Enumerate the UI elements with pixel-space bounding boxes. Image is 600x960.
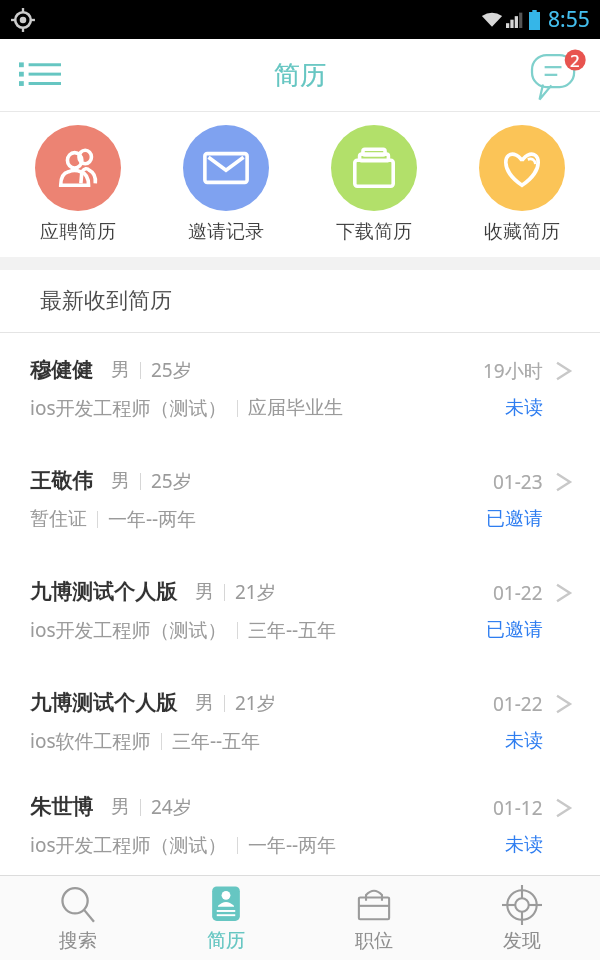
staticText: 九博测试个人版 (30, 579, 177, 605)
staticText: 职位 (355, 929, 393, 953)
staticText: 25岁 (151, 468, 192, 494)
staticText: 穆健健 (30, 357, 93, 383)
staticText: 01-22 (493, 580, 543, 606)
staticText: 收藏简历 (484, 220, 560, 244)
staticText: 三年--五年 (248, 617, 337, 643)
staticText: 简历 (274, 59, 326, 92)
button[interactable]: Messages (528, 44, 590, 106)
staticText: 朱世博 (30, 794, 93, 820)
staticText: 最新收到简历 (40, 287, 172, 315)
staticText: 王敬伟 (30, 468, 93, 494)
staticText: 已邀请 (486, 618, 543, 642)
staticText: 简历 (207, 929, 245, 953)
button[interactable]: 应聘简历 (8, 125, 148, 244)
staticText: 男 (195, 691, 214, 715)
staticText: 2 (570, 49, 580, 72)
staticText: 暂住证 (30, 507, 87, 531)
staticText: 8:55 (548, 5, 590, 34)
staticText: 三年--五年 (172, 728, 261, 754)
button[interactable]: 简历 (156, 884, 296, 953)
staticText: 21岁 (235, 690, 276, 716)
staticText: 未读 (505, 729, 543, 753)
button[interactable]: 九博测试个人版 (0, 555, 600, 666)
staticText: 01-12 (493, 795, 543, 821)
button[interactable]: 发现 (452, 884, 592, 953)
staticText: 未读 (505, 833, 543, 857)
staticText: 应聘简历 (40, 220, 116, 244)
button[interactable]: 搜索 (8, 884, 148, 953)
staticText: 下载简历 (336, 220, 412, 244)
staticText: 搜索 (59, 929, 97, 953)
button[interactable]: 下载简历 (304, 125, 444, 244)
button[interactable]: 朱世博 (0, 777, 600, 875)
button[interactable]: 收藏简历 (452, 125, 592, 244)
staticText: 男 (111, 358, 130, 382)
staticText: 一年--两年 (248, 832, 337, 858)
staticText: 邀请记录 (188, 220, 264, 244)
button[interactable]: 穆健健 (0, 333, 600, 444)
staticText: ios开发工程师（测试） (30, 617, 227, 643)
staticText: ios开发工程师（测试） (30, 832, 227, 858)
button[interactable]: 邀请记录 (156, 125, 296, 244)
staticText: 发现 (503, 929, 541, 953)
staticText: ios软件工程师 (30, 728, 151, 754)
button[interactable]: 九博测试个人版 (0, 666, 600, 777)
staticText: 未读 (505, 396, 543, 420)
staticText: 一年--两年 (108, 506, 197, 532)
staticText: 男 (111, 469, 130, 493)
button[interactable]: 职位 (304, 884, 444, 953)
staticText: 九博测试个人版 (30, 690, 177, 716)
staticText: 01-22 (493, 691, 543, 717)
staticText: 男 (195, 580, 214, 604)
staticText: ios开发工程师（测试） (30, 395, 227, 421)
staticText: 01-23 (493, 469, 543, 495)
staticText: 男 (111, 795, 130, 819)
staticText: 19小时 (483, 358, 543, 384)
staticText: 25岁 (151, 357, 192, 383)
button[interactable]: Menu (12, 47, 68, 103)
button[interactable]: 王敬伟 (0, 444, 600, 555)
staticText: 24岁 (151, 794, 192, 820)
staticText: 21岁 (235, 579, 276, 605)
staticText: 应届毕业生 (248, 396, 343, 420)
staticText: 已邀请 (486, 507, 543, 531)
